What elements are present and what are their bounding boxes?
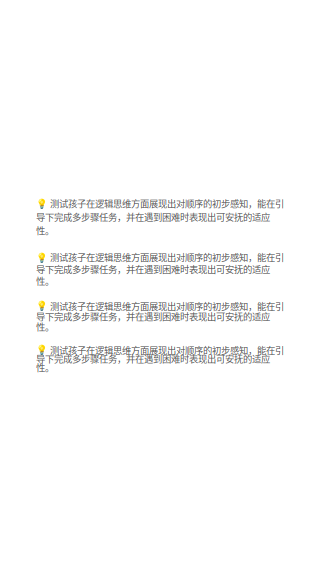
staticText: 💡 测试孩子在逻辑思维方面展现出对顺序的初步感知，能在引导下完成多步骤任务，并在… xyxy=(36,196,284,237)
staticText: 💡 测试孩子在逻辑思维方面展现出对顺序的初步感知，能在引导下完成多步骤任务，并在… xyxy=(36,251,284,287)
staticText: 💡 测试孩子在逻辑思维方面展现出对顺序的初步感知，能在引导下完成多步骤任务，并在… xyxy=(36,301,284,331)
staticText: 💡 测试孩子在逻辑思维方面展现出对顺序的初步感知，能在引导下完成多步骤任务，并在… xyxy=(36,345,284,371)
